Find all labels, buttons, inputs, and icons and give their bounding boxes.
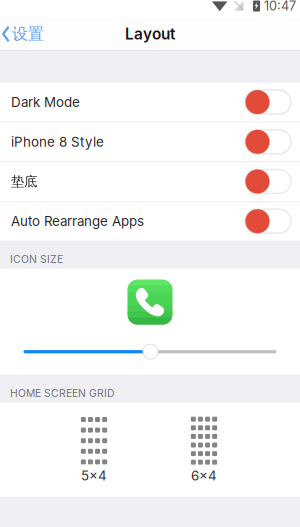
- button[interactable]: Dark Mode: [0, 83, 300, 122]
- staticText: Dark Mode: [11, 94, 80, 110]
- staticText: iPhone 8 Style: [11, 134, 104, 150]
- button[interactable]: 垫底: [0, 162, 300, 201]
- staticText: 设置: [12, 24, 44, 44]
- button[interactable]: 设置: [0, 20, 52, 48]
- staticText: 垫底: [11, 173, 37, 190]
- button[interactable]: 6x4: [184, 417, 224, 484]
- staticText: 6x4: [191, 468, 217, 484]
- staticText: Auto Rearrange Apps: [11, 213, 144, 229]
- button[interactable]: Auto Rearrange Apps: [0, 202, 300, 241]
- staticText: ICON SIZE: [10, 253, 63, 265]
- button[interactable]: 5x4: [74, 417, 114, 484]
- button[interactable]: iPhone 8 Style: [0, 122, 300, 161]
- staticText: Layout: [125, 25, 175, 43]
- staticText: HOME SCREEN GRID: [10, 387, 115, 399]
- staticText: 5x4: [81, 468, 107, 484]
- staticText: 10:47: [264, 0, 296, 14]
